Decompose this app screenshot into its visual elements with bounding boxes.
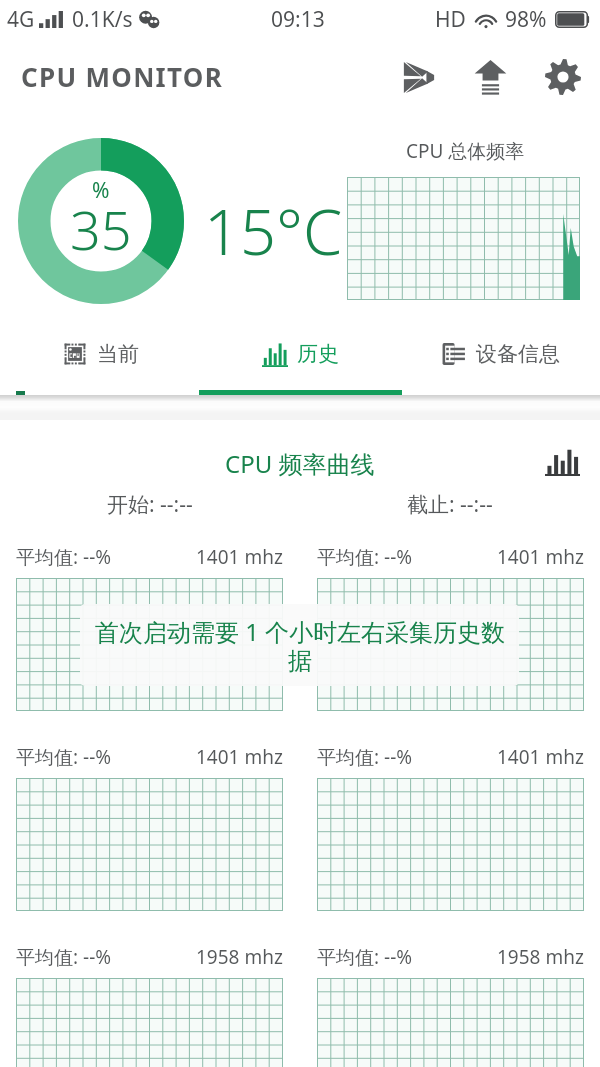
staticText: CPU MONITOR	[21, 59, 223, 94]
staticText: HD	[435, 5, 466, 34]
staticText: 1401 mhz	[196, 744, 283, 770]
button[interactable]: 历史	[200, 318, 400, 390]
staticText: 4G	[7, 5, 35, 34]
button[interactable]: 设备信息	[400, 318, 600, 390]
button[interactable]: 当前	[0, 318, 200, 390]
staticText: 1401 mhz	[196, 544, 283, 570]
staticText: 设备信息	[476, 341, 560, 367]
button[interactable]: Settings	[539, 51, 587, 103]
staticText: 1401 mhz	[497, 544, 584, 570]
staticText: 截止: --:--	[407, 490, 493, 519]
staticText: 平均值: --%	[317, 944, 413, 970]
staticText: 1958 mhz	[497, 944, 584, 970]
staticText: 15°C	[204, 188, 343, 274]
staticText: CPU 频率曲线	[225, 447, 375, 480]
staticText: 平均值: --%	[16, 544, 112, 570]
staticText: CPU 总体频率	[406, 138, 525, 164]
staticText: 1958 mhz	[196, 944, 283, 970]
button[interactable]: Google Play	[393, 51, 441, 103]
staticText: 1401 mhz	[497, 744, 584, 770]
staticText: 09:13	[271, 5, 325, 34]
staticText: 98%	[505, 5, 547, 34]
staticText: 当前	[97, 341, 139, 367]
staticText: 平均值: --%	[16, 744, 112, 770]
staticText: 0.1K/s	[72, 5, 133, 34]
staticText: 历史	[297, 341, 339, 367]
staticText: 首次启动需要 1 个小时左右采集历史数据	[88, 615, 512, 676]
staticText: 开始: --:--	[107, 490, 193, 519]
staticText: 平均值: --%	[317, 744, 413, 770]
staticText: 平均值: --%	[317, 544, 413, 570]
button[interactable]: Share	[466, 51, 514, 103]
staticText: 35	[70, 192, 132, 266]
staticText: %	[92, 176, 110, 205]
staticText: 平均值: --%	[16, 944, 112, 970]
